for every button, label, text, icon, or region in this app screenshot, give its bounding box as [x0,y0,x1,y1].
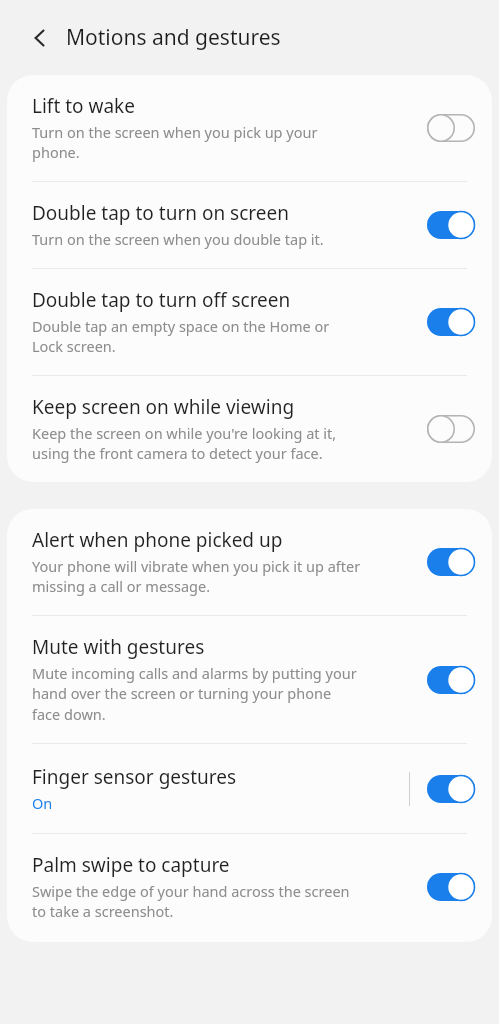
staticText: Swipe the edge of your hand across the s… [32,881,350,922]
button[interactable]: On [424,869,478,905]
button[interactable]: On [424,771,478,807]
staticText: Double tap to turn on screen [32,200,289,226]
staticText: Mute with gestures [32,634,205,660]
staticText: Your phone will vibrate when you pick it… [32,556,361,597]
staticText: Keep screen on while viewing [32,394,295,420]
staticText: Lift to wake [32,93,135,119]
staticText: Alert when phone picked up [32,527,283,553]
staticText: Double tap an empty space on the Home or… [32,316,330,357]
button[interactable]: Finger sensor gestures [7,744,492,833]
button[interactable]: On [424,304,478,340]
button[interactable]: Mute with gestures [7,616,492,743]
staticText: Double tap to turn off screen [32,287,291,313]
staticText: Turn on the screen when you pick up your… [32,122,318,163]
staticText: Motions and gestures [66,23,281,52]
staticText: Turn on the screen when you double tap i… [32,229,324,249]
button[interactable]: Back [20,18,60,58]
button[interactable]: On [424,662,478,698]
button[interactable]: On [424,544,478,580]
button[interactable]: Off [424,411,478,447]
button[interactable]: Palm swipe to capture [7,834,492,942]
button[interactable]: Keep screen on while viewing [7,376,492,482]
staticText: Palm swipe to capture [32,852,230,878]
button[interactable]: On [424,207,478,243]
button[interactable]: Lift to wake [7,75,492,181]
button[interactable]: Double tap to turn off screen [7,269,492,375]
button[interactable]: Double tap to turn on screen [7,182,492,268]
button[interactable]: Alert when phone picked up [7,509,492,615]
staticText: Mute incoming calls and alarms by puttin… [32,663,357,725]
staticText: Keep the screen on while you're looking … [32,423,337,464]
button[interactable]: Off [424,110,478,146]
staticText: On [32,793,53,813]
staticText: Finger sensor gestures [32,764,237,790]
